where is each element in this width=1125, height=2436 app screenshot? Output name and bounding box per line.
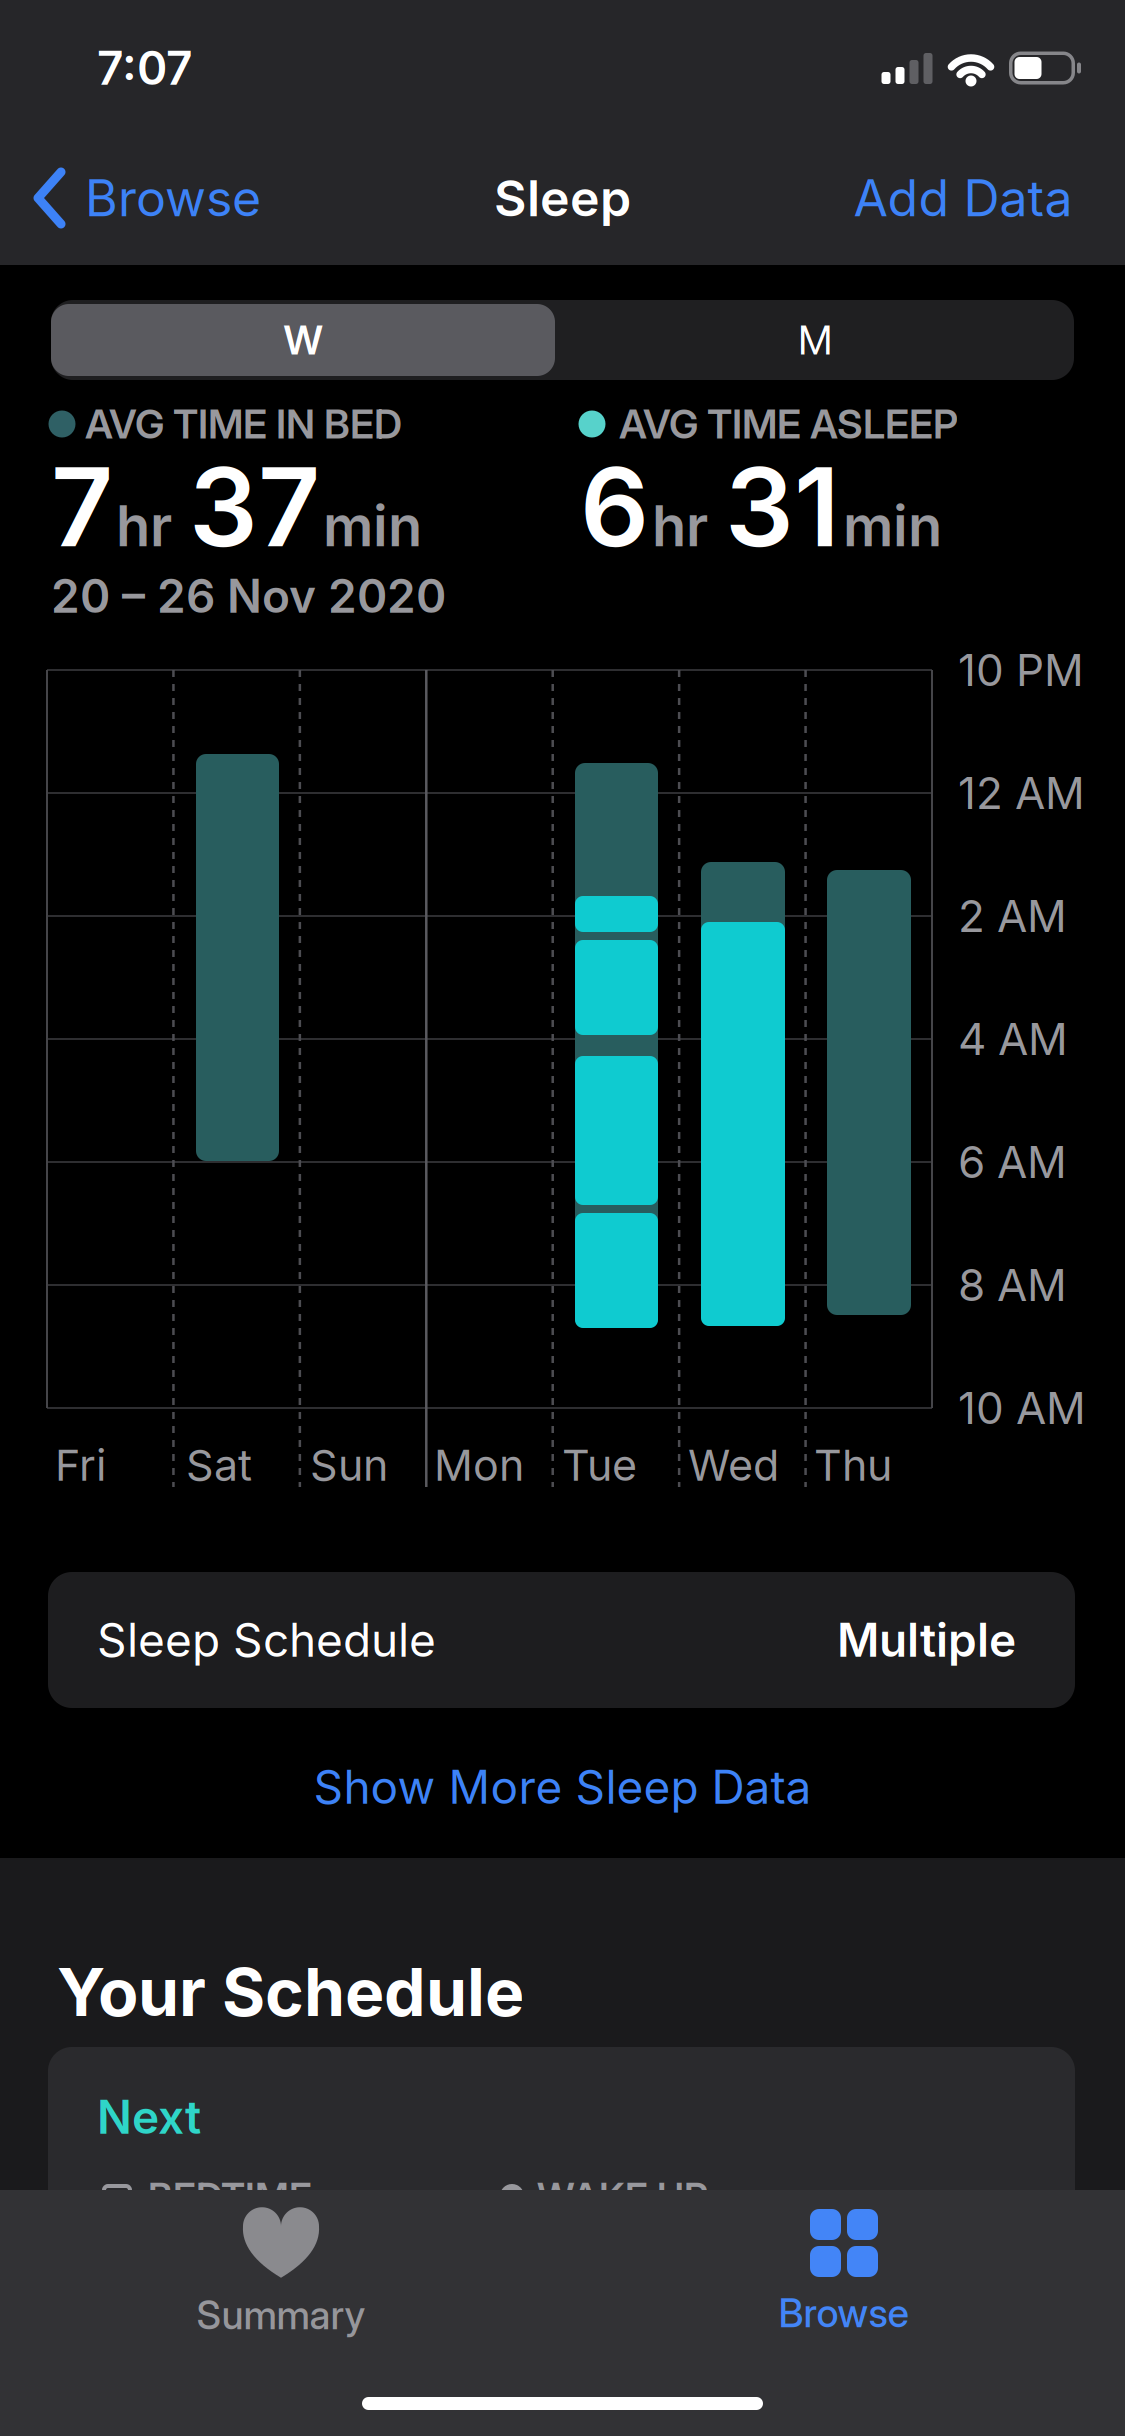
staticText: 4 AM <box>958 1013 1068 1065</box>
staticText: AVG TIME ASLEEP <box>619 400 958 448</box>
button[interactable]: Show More Sleep Data <box>313 1760 811 1814</box>
staticText: Sleep Schedule <box>97 1613 436 1667</box>
button[interactable]: Summary <box>196 2206 365 2338</box>
staticText: Tue <box>562 1440 637 1490</box>
staticText: Show More Sleep Data <box>313 1760 811 1814</box>
staticText: Browse <box>778 2290 909 2336</box>
staticText: W <box>283 316 322 364</box>
button[interactable]: Add Data <box>853 168 1072 227</box>
staticText: M <box>798 316 832 364</box>
staticText: Browse <box>85 168 261 227</box>
staticText: 37 <box>189 443 320 571</box>
staticText: WAKE UP <box>537 2174 708 2218</box>
staticText: 7 <box>51 443 113 571</box>
staticText: Mon <box>434 1440 524 1490</box>
staticText: Multiple <box>837 1613 1016 1667</box>
staticText: 12 AM <box>958 767 1085 819</box>
staticText: min <box>843 493 942 559</box>
staticText: Sleep <box>494 168 631 227</box>
staticText: 10 PM <box>958 644 1084 696</box>
staticText: Wed <box>688 1440 779 1490</box>
staticText: 6 AM <box>958 1136 1067 1188</box>
staticText: Sat <box>186 1440 252 1490</box>
button[interactable]: M <box>563 304 1067 376</box>
staticText: Sun <box>310 1440 388 1490</box>
staticText: 8 AM <box>958 1259 1067 1311</box>
staticText: Fri <box>55 1440 106 1490</box>
staticText: BEDTIME <box>148 2174 312 2218</box>
button[interactable]: Browse <box>778 2208 909 2336</box>
staticText: 20 – 26 Nov 2020 <box>51 569 446 623</box>
staticText: hr <box>116 493 172 559</box>
button[interactable]: Browse <box>31 167 261 229</box>
staticText: 6 <box>580 443 649 571</box>
staticText: Thu <box>814 1440 892 1490</box>
staticText: 10 AM <box>958 1382 1086 1434</box>
staticText: 7:07 <box>97 41 193 95</box>
staticText: Add Data <box>853 168 1072 227</box>
staticText: min <box>323 493 422 559</box>
button[interactable]: Sleep Schedule <box>48 1572 1075 1708</box>
staticText: Next <box>97 2090 201 2144</box>
staticText: hr <box>652 493 708 559</box>
staticText: 2 AM <box>958 890 1067 942</box>
staticText: Your Schedule <box>57 1953 524 2031</box>
staticText: Summary <box>196 2292 365 2338</box>
staticText: 31 <box>725 443 840 571</box>
staticText: AVG TIME IN BED <box>85 400 402 448</box>
button[interactable]: W <box>51 304 555 376</box>
